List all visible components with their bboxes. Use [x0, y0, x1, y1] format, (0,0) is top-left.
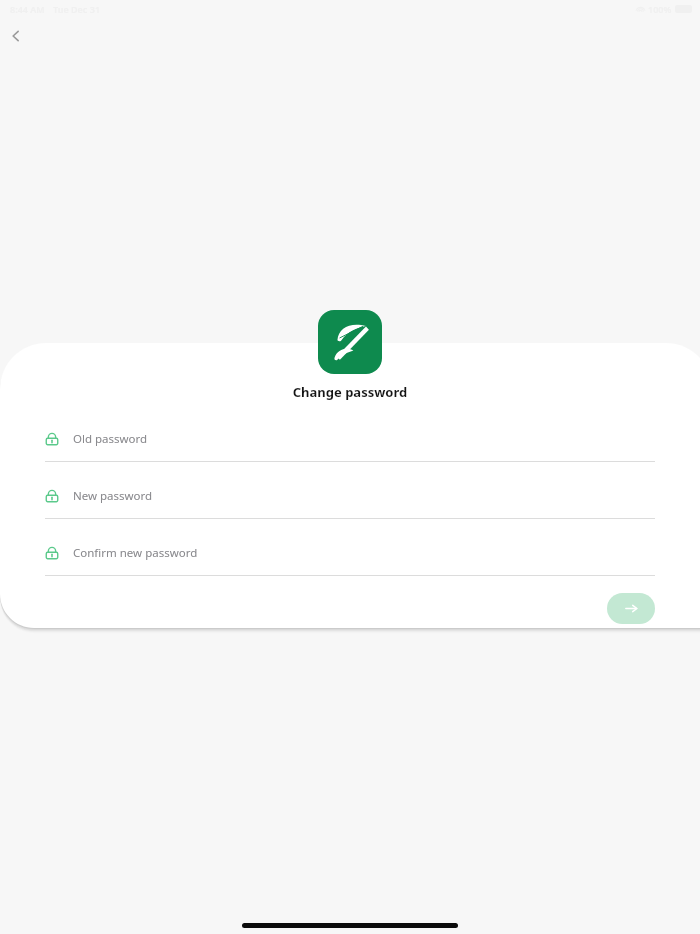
staticText: Change password	[0, 383, 700, 401]
button[interactable]: Old password	[45, 426, 655, 462]
button[interactable]: New password	[45, 483, 655, 519]
staticText: Old password	[73, 431, 148, 447]
button[interactable]: Back	[2, 22, 30, 50]
button[interactable]: Submit	[607, 593, 655, 624]
button[interactable]: Confirm new password	[45, 540, 655, 576]
other: App logo	[318, 310, 382, 374]
staticText: New password	[73, 488, 153, 504]
staticText: Confirm new password	[73, 545, 198, 561]
